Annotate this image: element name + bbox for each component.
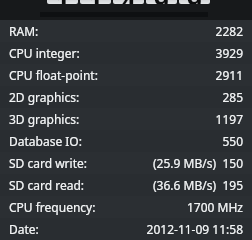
staticText: 550 xyxy=(222,133,243,149)
staticText: 1 xyxy=(88,0,103,4)
button[interactable]: CPU float-point: xyxy=(0,64,252,86)
button[interactable]: RAM: xyxy=(0,20,252,42)
staticText: (36.6 MB/s) xyxy=(153,177,217,193)
staticText: CPU integer: xyxy=(9,45,80,61)
button[interactable]: 2D graphics: xyxy=(0,86,252,108)
staticText: 9 xyxy=(187,0,202,4)
staticText: (25.9 MB/s) xyxy=(153,155,217,171)
staticText: 1197 xyxy=(215,111,243,127)
staticText: 4 xyxy=(121,0,136,4)
button[interactable]: 3D graphics: xyxy=(0,108,252,130)
staticText: 150 xyxy=(222,155,243,171)
button[interactable]: CPU frequency: xyxy=(0,196,252,218)
button[interactable]: CPU integer: xyxy=(0,42,252,64)
staticText: CPU float-point: xyxy=(9,67,98,83)
staticText: 2911 xyxy=(215,67,243,83)
staticText: 195 xyxy=(222,177,243,193)
staticText: RAM: xyxy=(9,23,39,39)
staticText: 3D graphics: xyxy=(9,111,80,127)
button[interactable]: Date: xyxy=(0,218,252,240)
button[interactable]: SD card write: xyxy=(0,152,252,174)
staticText: 2282 xyxy=(215,23,243,39)
staticText: 1 xyxy=(55,0,70,4)
staticText: 1700 MHz xyxy=(187,199,243,215)
staticText: 9 xyxy=(154,0,169,4)
staticText: SD card read: xyxy=(9,177,84,193)
staticText: 2012-11-09 11:58 xyxy=(146,221,243,237)
button[interactable]: Database IO: xyxy=(0,130,252,152)
staticText: SD card write: xyxy=(9,155,87,171)
staticText: 3929 xyxy=(215,45,243,61)
staticText: CPU frequency: xyxy=(9,199,96,215)
staticText: 2D graphics: xyxy=(9,89,80,105)
staticText: 285 xyxy=(222,89,243,105)
staticText: Database IO: xyxy=(9,133,82,149)
button[interactable]: SD card read: xyxy=(0,174,252,196)
staticText: Date: xyxy=(9,221,39,237)
